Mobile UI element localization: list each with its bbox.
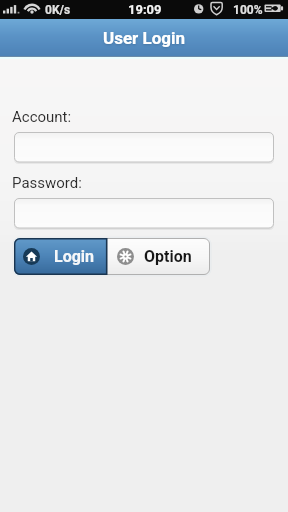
button[interactable]: Option [107,238,210,275]
staticText: 100% [233,3,263,17]
staticText: User Login [103,28,186,48]
staticText: Login [54,247,95,266]
staticText: Password: [12,174,82,192]
button[interactable]: Password input field [14,198,274,229]
staticText: Account: [12,108,72,126]
staticText: Option [144,247,192,266]
button[interactable]: Login [14,238,107,275]
staticText: 0K/s [45,3,71,17]
staticText: 19:09 [128,2,162,17]
button[interactable]: Account input field [14,132,274,163]
